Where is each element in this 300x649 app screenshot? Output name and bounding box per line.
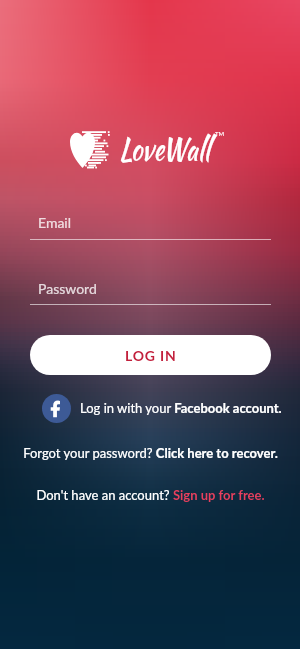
staticText: TM [215, 130, 225, 137]
button[interactable]: Facebook [42, 390, 282, 426]
staticText: Email [38, 214, 72, 231]
staticText: Don't have an account? Sign up for free. [36, 487, 265, 503]
staticText: LOG IN [125, 347, 177, 364]
button[interactable]: Don't have an account? Sign up for free. [0, 485, 300, 505]
button[interactable]: Forgot your password? Click here to reco… [0, 443, 300, 463]
staticText: LoveWall [119, 126, 210, 171]
staticText: Log in with your Facebook account. [80, 400, 282, 416]
staticText: Forgot your password? Click here to reco… [23, 445, 278, 461]
staticText: Password [38, 280, 97, 297]
button[interactable]: LOG IN [30, 335, 271, 375]
button[interactable] [30, 274, 271, 308]
button[interactable] [30, 208, 271, 242]
other: Facebook [42, 394, 71, 423]
